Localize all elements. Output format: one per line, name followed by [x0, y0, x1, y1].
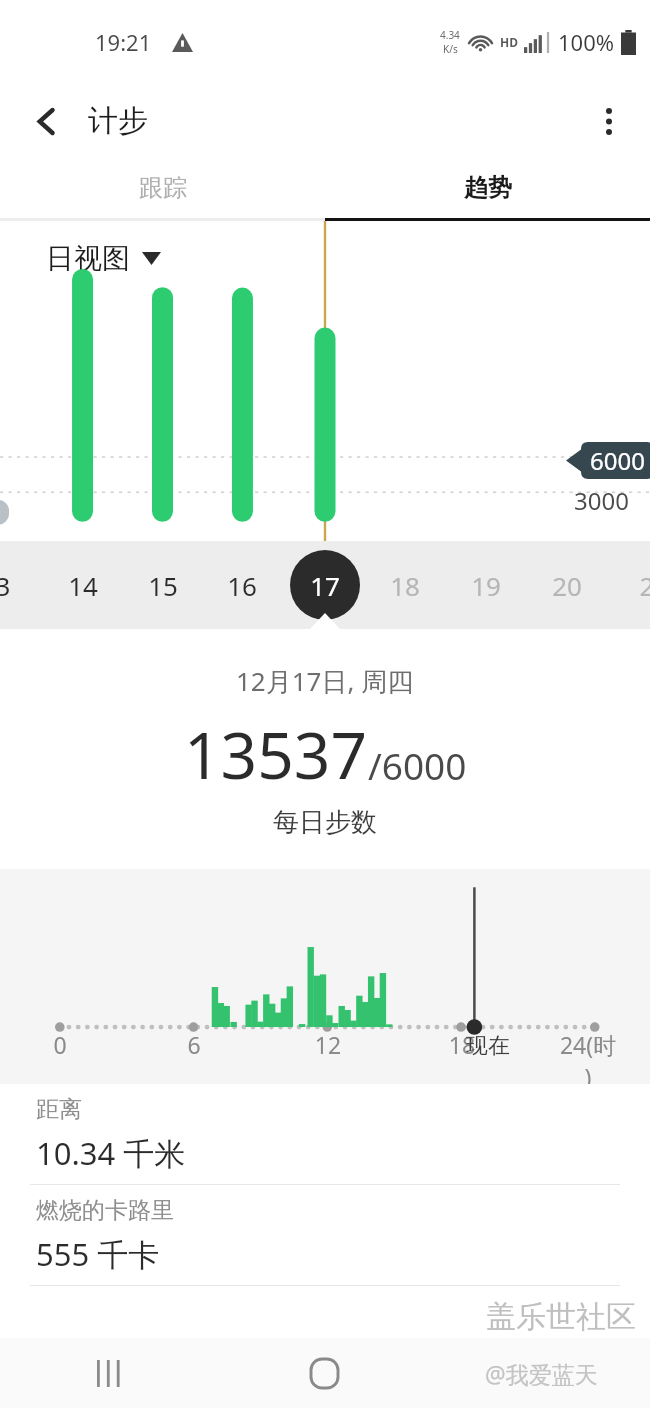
button[interactable]: 3	[0, 541, 650, 629]
staticText: 19:21	[95, 27, 152, 57]
staticText: 3000	[574, 484, 629, 517]
staticText: 100%	[558, 27, 615, 57]
staticText: 燃烧的卡路里	[36, 1196, 174, 1225]
staticText: 跟踪	[139, 173, 187, 203]
button[interactable]: 跟踪	[0, 158, 325, 218]
button[interactable]: 日视图	[46, 241, 161, 276]
staticText: 每日步数	[273, 806, 377, 839]
button[interactable]: Recent apps	[0, 1338, 216, 1408]
staticText: 盖乐世社区	[486, 1298, 636, 1336]
button[interactable]: 趋势	[325, 158, 650, 218]
staticText: 24(时)	[558, 1029, 618, 1092]
staticText: K/s	[443, 42, 458, 56]
staticText: HD	[500, 34, 518, 50]
staticText: 距离	[36, 1095, 82, 1124]
staticText: 18	[432, 1029, 492, 1060]
staticText: 6	[164, 1029, 224, 1060]
staticText: 计步	[88, 102, 148, 140]
staticText: 13537	[184, 711, 368, 798]
staticText: 现在	[466, 1032, 510, 1060]
staticText: 10.34 千米	[36, 1132, 186, 1174]
button[interactable]: Home	[216, 1338, 433, 1408]
staticText: 6000	[590, 444, 645, 477]
staticText: 555 千卡	[36, 1233, 160, 1275]
staticText: 趋势	[464, 173, 512, 203]
button[interactable]: Back	[22, 96, 72, 146]
staticText: 19	[466, 568, 506, 603]
button[interactable]: 距离	[0, 1084, 650, 1184]
staticText: 4.34	[440, 28, 460, 42]
staticText: 17	[305, 568, 345, 603]
staticText: 18	[385, 568, 425, 603]
staticText: 20	[547, 568, 587, 603]
staticText: 14	[63, 568, 103, 603]
button[interactable]: Back	[433, 1338, 650, 1408]
staticText: /6000	[368, 740, 467, 790]
staticText: 0	[30, 1029, 90, 1060]
staticText: 2	[627, 568, 650, 603]
staticText: 3	[0, 568, 23, 603]
staticText: 日视图	[46, 241, 130, 276]
staticText: 12	[298, 1029, 358, 1060]
staticText: 12月17日, 周四	[236, 663, 414, 699]
staticText: @我爱蓝天	[485, 1358, 598, 1389]
staticText: 15	[143, 568, 183, 603]
button[interactable]: 燃烧的卡路里	[0, 1185, 650, 1285]
staticText: 16	[222, 568, 262, 603]
button[interactable]: More options	[584, 96, 634, 146]
